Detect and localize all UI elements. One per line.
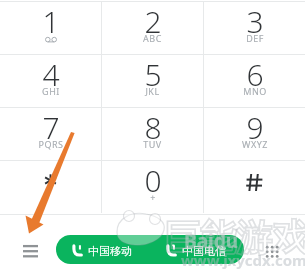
button[interactable]: 0 <box>102 160 203 213</box>
staticText: WXYZ <box>242 138 268 150</box>
staticText: 中国移动 <box>88 244 132 258</box>
staticText: 2 <box>144 1 162 42</box>
staticText: JKL <box>145 85 160 97</box>
staticText: 8 <box>144 107 162 148</box>
button[interactable]: Menu <box>16 237 44 265</box>
staticText: 1 <box>42 1 60 42</box>
button[interactable] <box>0 160 101 213</box>
staticText: 0 <box>144 160 162 201</box>
button[interactable]: Dialpad <box>258 238 286 266</box>
button[interactable]: 6 <box>204 54 305 107</box>
staticText: TUV <box>143 138 162 150</box>
button[interactable]: 5 <box>102 54 203 107</box>
staticText: 5 <box>144 54 162 95</box>
button[interactable] <box>204 160 305 213</box>
button[interactable]: 4 <box>0 54 101 107</box>
button[interactable]: 1 <box>0 1 101 54</box>
staticText: DEF <box>246 32 264 44</box>
button[interactable]: 中国电信 <box>150 235 244 264</box>
staticText: PQRS <box>38 138 64 150</box>
staticText: ABC <box>143 32 162 44</box>
button[interactable]: 9 <box>204 107 305 160</box>
staticText: 7 <box>42 107 60 148</box>
staticText: 9 <box>246 107 264 148</box>
staticText: GHI <box>42 85 60 97</box>
button[interactable]: 7 <box>0 107 101 160</box>
staticText: 中国电信 <box>182 244 226 258</box>
staticText: MNO <box>243 85 267 97</box>
button[interactable]: 3 <box>204 1 305 54</box>
staticText: + <box>150 191 156 203</box>
button[interactable]: 8 <box>102 107 203 160</box>
staticText: 3 <box>246 1 264 42</box>
staticText: 6 <box>246 54 264 95</box>
staticText: 4 <box>42 54 60 95</box>
button[interactable]: 2 <box>102 1 203 54</box>
button[interactable]: 中国移动 <box>56 235 150 264</box>
